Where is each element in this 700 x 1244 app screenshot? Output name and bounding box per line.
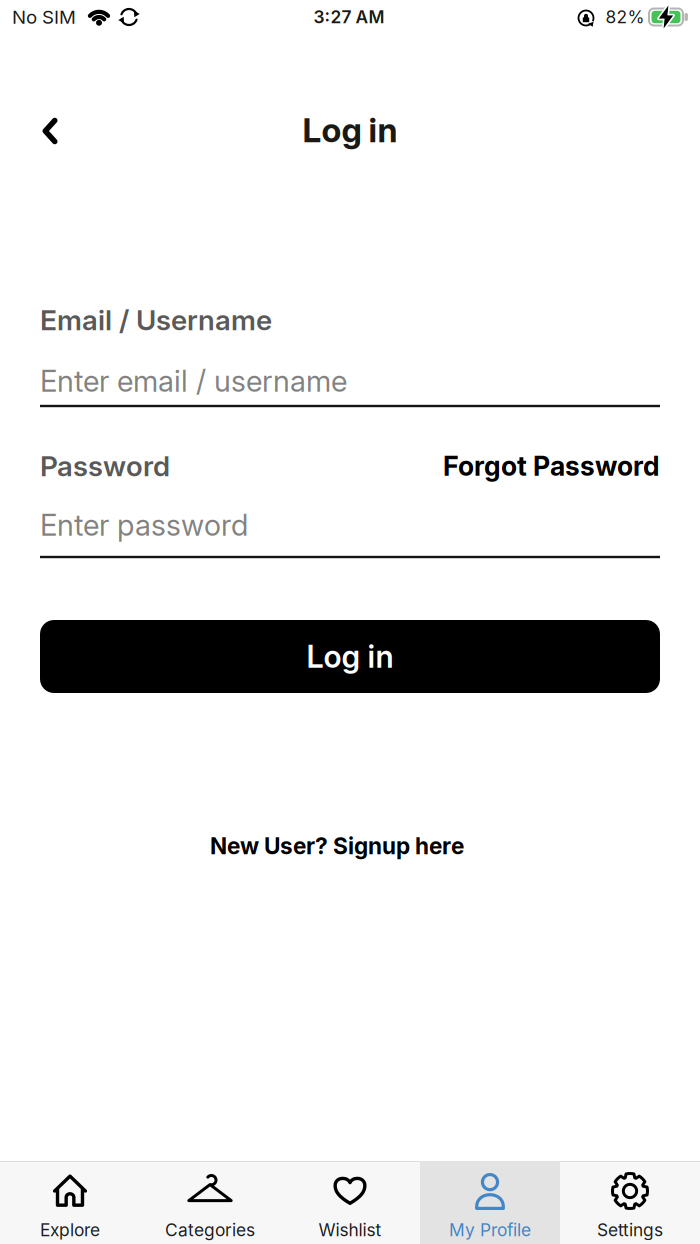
staticText: New User? Signup here xyxy=(210,833,464,859)
staticText: Forgot Password xyxy=(443,450,660,482)
button[interactable]: Wishlist xyxy=(280,1161,420,1244)
staticText: My Profile xyxy=(449,1220,531,1240)
staticText: Enter password xyxy=(40,508,248,542)
button[interactable]: Forgot Password xyxy=(443,450,660,482)
button[interactable]: My Profile xyxy=(420,1161,560,1244)
staticText: 82% xyxy=(605,7,644,27)
staticText: Wishlist xyxy=(318,1220,381,1240)
staticText: Password xyxy=(40,449,170,482)
staticText: Categories xyxy=(165,1220,255,1240)
button[interactable]: Explore xyxy=(0,1161,140,1244)
staticText: Log in xyxy=(302,110,397,150)
button[interactable]: Log in xyxy=(40,620,660,693)
staticText: No SIM xyxy=(12,6,76,28)
staticText: 3:27 AM xyxy=(313,7,384,27)
button[interactable]: Back xyxy=(31,110,69,151)
staticText: Email / Username xyxy=(40,303,272,336)
staticText: Enter email / username xyxy=(40,364,347,398)
button[interactable]: Enter email / username xyxy=(40,355,660,407)
button[interactable]: Categories xyxy=(140,1161,280,1244)
button[interactable]: New User? Signup here xyxy=(210,833,464,859)
button[interactable]: Enter password xyxy=(40,499,660,557)
button[interactable]: Settings xyxy=(560,1161,700,1244)
staticText: Settings xyxy=(597,1220,663,1240)
staticText: Explore xyxy=(40,1220,100,1240)
staticText: Log in xyxy=(306,638,393,675)
